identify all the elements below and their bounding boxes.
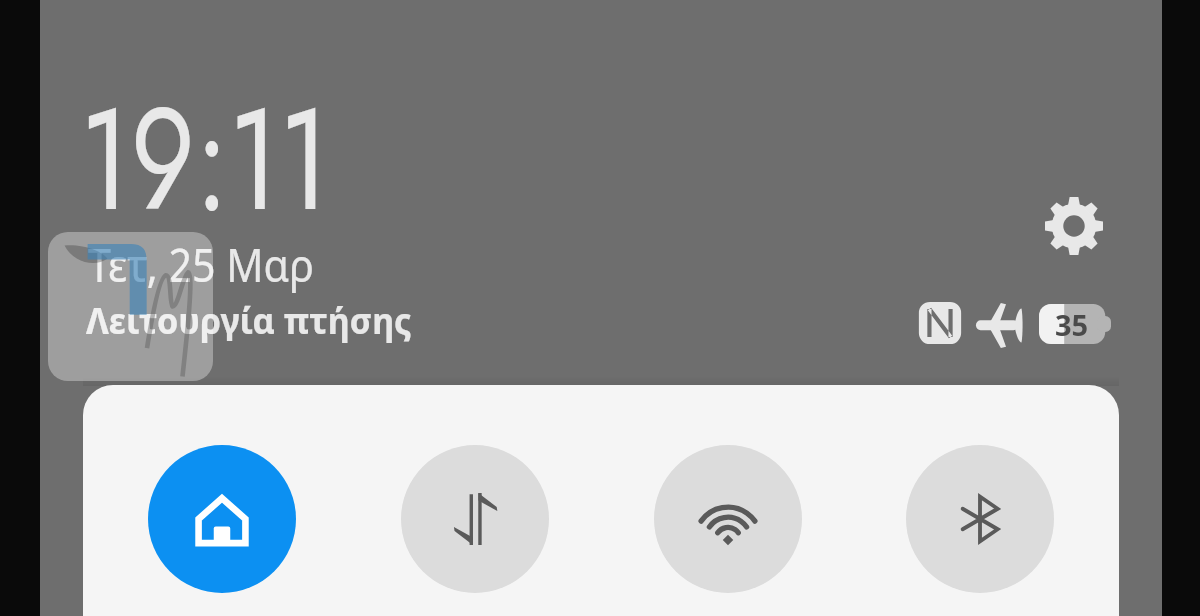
button[interactable]: Home — [148, 445, 296, 593]
staticText: Τετ, 25 Μαρ — [88, 234, 314, 295]
button[interactable]: Wi-Fi — [654, 445, 802, 593]
button[interactable]: Mobile data — [401, 445, 549, 593]
staticText: 19:11 — [80, 57, 330, 262]
staticText: Λειτουργία πτήσης — [86, 297, 412, 345]
staticText: 35 — [1055, 305, 1089, 344]
button[interactable]: Bluetooth — [906, 445, 1054, 593]
button[interactable]: Settings — [1034, 186, 1114, 266]
